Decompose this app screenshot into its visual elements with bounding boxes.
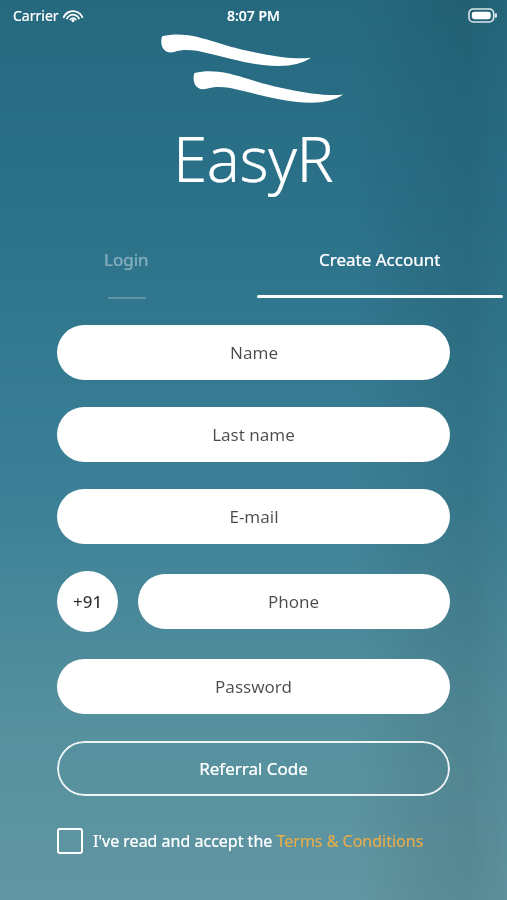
staticText: Carrier: [13, 6, 59, 25]
staticText: +91: [73, 590, 103, 613]
button[interactable]: Accept terms checkbox: [57, 828, 450, 854]
button[interactable]: Create Account: [253, 248, 507, 298]
staticText: Referral Code: [199, 757, 308, 780]
staticText: Login: [104, 248, 149, 271]
button[interactable]: Referral Code: [57, 741, 450, 796]
button[interactable]: Login: [0, 248, 253, 299]
button[interactable]: Name: [57, 325, 450, 380]
staticText: Name: [230, 341, 278, 364]
staticText: I've read and accept the Terms & Conditi…: [93, 830, 424, 852]
other: Accept terms checkbox: [57, 828, 83, 854]
button[interactable]: Password: [57, 659, 450, 714]
staticText: E-mail: [229, 505, 279, 528]
button[interactable]: E-mail: [57, 489, 450, 544]
button[interactable]: Country code +91: [57, 571, 118, 632]
button[interactable]: Phone: [138, 574, 450, 629]
button[interactable]: Last name: [57, 407, 450, 462]
staticText: Last name: [212, 423, 295, 446]
staticText: 8:07 PM: [227, 6, 280, 25]
staticText: EasyR: [173, 116, 334, 200]
staticText: Create Account: [319, 248, 441, 271]
staticText: Phone: [268, 590, 320, 613]
staticText: Password: [215, 675, 292, 698]
